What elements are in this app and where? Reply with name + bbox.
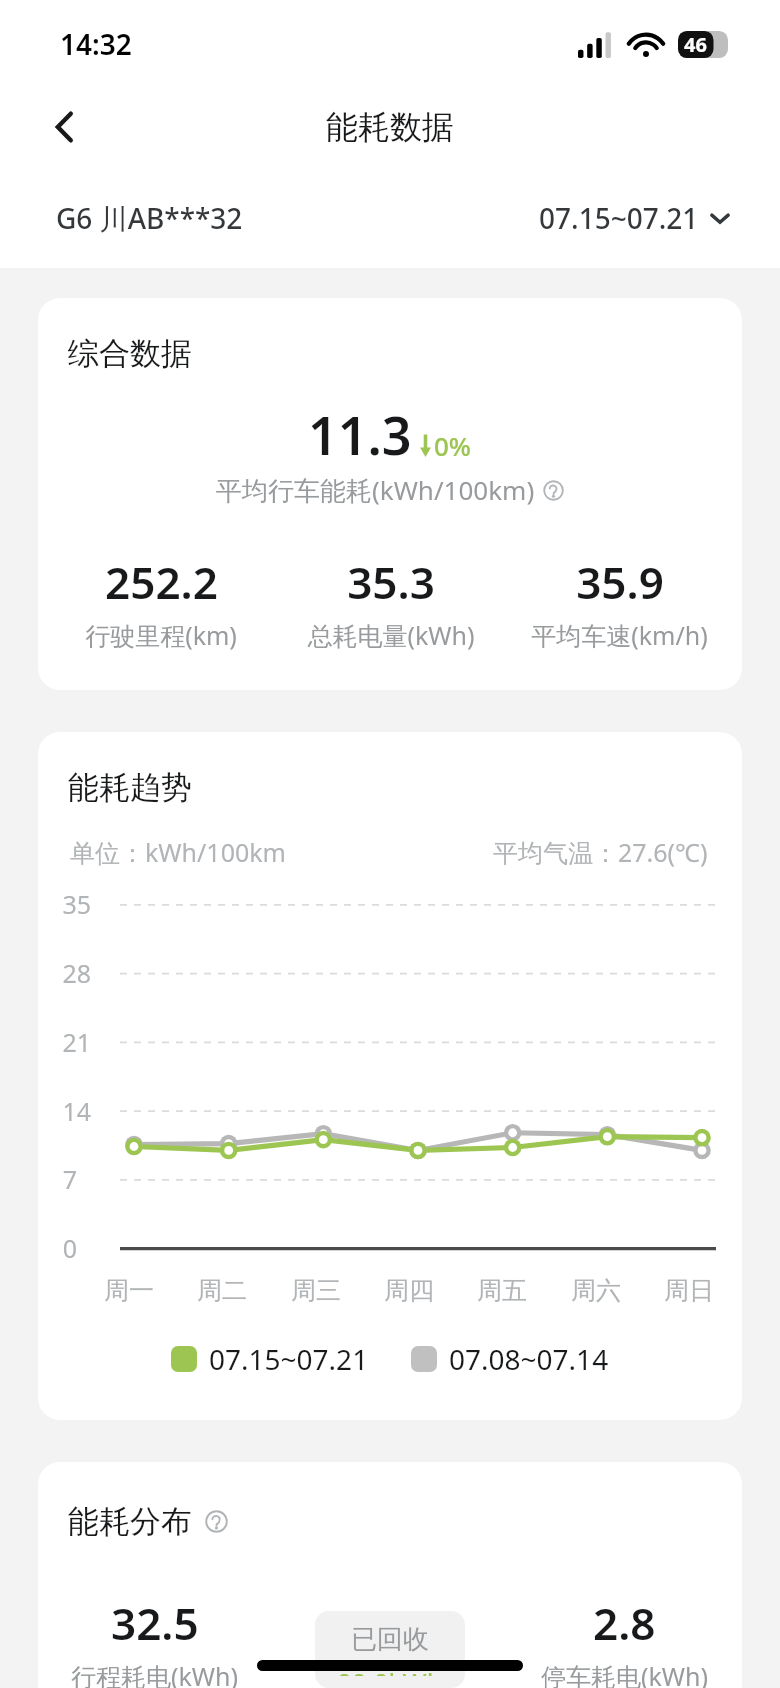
staticText: 7 (62, 1162, 77, 1196)
staticText: 07.08~07.14 (449, 1340, 609, 1378)
staticText: 07.15~07.21 (539, 199, 699, 237)
staticText: 28 (62, 956, 91, 990)
staticText: 综合数据 (68, 334, 192, 373)
staticText: 0% (434, 428, 472, 463)
staticText: 周二 (197, 1275, 247, 1306)
staticText: 252.2 (105, 552, 218, 612)
staticText: 已回收 (351, 1623, 429, 1656)
button[interactable]: 07.08~07.14 (411, 1340, 609, 1378)
staticText: 2.8 (593, 1593, 656, 1653)
staticText: 能耗趋势 (68, 768, 192, 807)
staticText: 平均车速(km/h) (531, 618, 708, 652)
staticText: 32.5 (111, 1593, 199, 1653)
staticText: 07.15~07.21 (209, 1340, 369, 1378)
button[interactable]: Back (34, 96, 96, 158)
staticText: G6 川AB***32 (56, 199, 243, 237)
staticText: 周一 (104, 1275, 154, 1306)
button[interactable]: 07.15~07.21 (171, 1340, 369, 1378)
staticText: 35.9 (576, 552, 664, 612)
staticText: 0 (62, 1231, 77, 1265)
staticText: 00.0kWh (337, 1664, 443, 1676)
staticText: 行驶里程(km) (85, 618, 237, 652)
staticText: 停车耗电(kWh) (541, 1659, 709, 1688)
staticText: 行程耗电(kWh) (71, 1659, 239, 1688)
button[interactable]: 07.15~07.21 (539, 199, 732, 237)
staticText: 周六 (571, 1275, 621, 1306)
staticText: 35.3 (347, 552, 435, 612)
staticText: 21 (62, 1025, 91, 1059)
staticText: 46 (684, 31, 707, 58)
staticText: 平均行车能耗(kWh/100km) (216, 472, 535, 508)
staticText: 单位：kWh/100km (70, 835, 286, 869)
staticText: 11.3 (308, 399, 412, 470)
staticText: 14 (62, 1094, 91, 1128)
staticText: 平均气温：27.6(℃) (493, 835, 708, 869)
staticText: 能耗分布 (68, 1502, 192, 1541)
staticText: 周四 (384, 1275, 434, 1306)
staticText: 能耗数据 (326, 107, 454, 147)
staticText: 周日 (664, 1275, 714, 1306)
staticText: 总耗电量(kWh) (307, 618, 475, 652)
staticText: 35 (62, 887, 91, 921)
staticText: 周五 (477, 1275, 527, 1306)
staticText: 14:32 (60, 25, 132, 63)
staticText: 周三 (291, 1275, 341, 1306)
